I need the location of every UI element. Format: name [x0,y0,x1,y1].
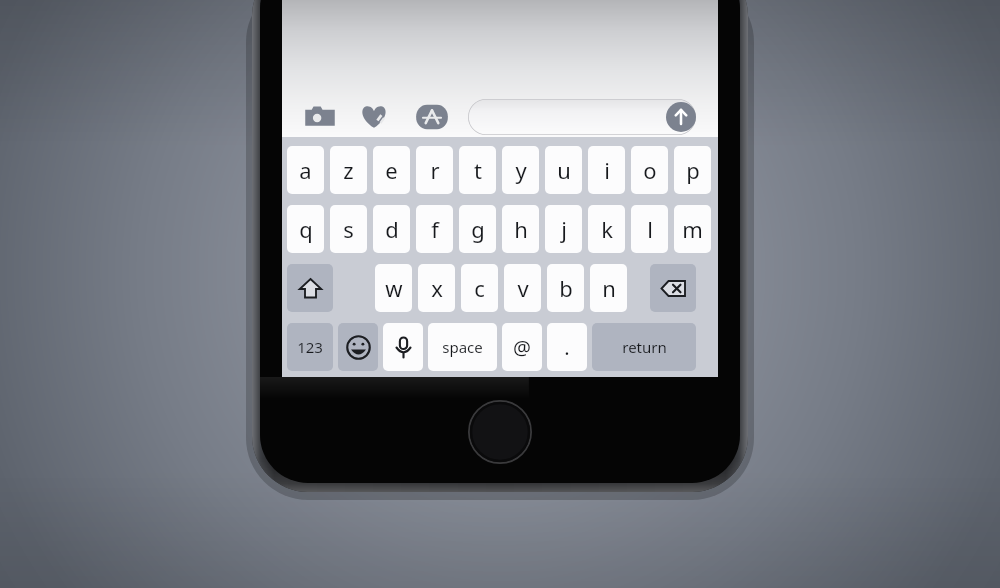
button[interactable]: . [547,323,587,371]
staticText: i [604,155,610,185]
button[interactable]: h [502,205,539,253]
button[interactable]: Backspace [650,264,696,312]
button[interactable]: w [375,264,412,312]
button[interactable]: x [418,264,455,312]
button[interactable]: i [588,146,625,194]
button[interactable]: v [504,264,541,312]
staticText: j [561,214,567,244]
button[interactable]: Shift [287,264,333,312]
button[interactable]: b [547,264,584,312]
staticText: 123 [297,337,323,357]
button[interactable]: App Store [414,99,450,135]
button[interactable]: r [416,146,453,194]
button[interactable]: space [428,323,497,371]
button[interactable]: @ [502,323,542,371]
staticText: n [602,273,616,303]
button[interactable]: 123 [287,323,333,371]
button[interactable]: Dictation [383,323,423,371]
button[interactable]: m [674,205,711,253]
staticText: p [686,155,700,185]
button[interactable]: Send [666,102,696,132]
staticText: q [299,214,313,244]
button[interactable]: l [631,205,668,253]
button[interactable]: c [461,264,498,312]
staticText: w [385,273,403,303]
button[interactable]: y [502,146,539,194]
button[interactable]: Message input [468,99,696,135]
staticText: c [474,273,485,303]
staticText: @ [513,334,531,361]
staticText: b [559,273,573,303]
button[interactable]: p [674,146,711,194]
button[interactable]: u [545,146,582,194]
staticText: space [442,337,483,357]
button[interactable]: n [590,264,627,312]
staticText: e [385,155,398,185]
staticText: d [385,214,399,244]
button[interactable]: f [416,205,453,253]
button[interactable]: q [287,205,324,253]
button[interactable]: Digital Touch [356,99,392,135]
button[interactable]: z [330,146,367,194]
staticText: u [557,155,571,185]
staticText: y [515,155,527,185]
button[interactable]: Camera [302,99,338,135]
staticText: s [343,214,354,244]
button[interactable]: return [592,323,696,371]
staticText: a [299,155,312,185]
staticText: . [564,334,570,361]
button[interactable]: t [459,146,496,194]
staticText: k [601,214,613,244]
staticText: v [517,273,529,303]
staticText: l [647,214,653,244]
staticText: f [431,214,439,244]
button[interactable]: d [373,205,410,253]
button[interactable]: j [545,205,582,253]
button[interactable]: o [631,146,668,194]
staticText: o [643,155,657,185]
staticText: z [343,155,354,185]
button[interactable]: a [287,146,324,194]
button[interactable]: k [588,205,625,253]
button[interactable]: Emoji [338,323,378,371]
staticText: r [430,155,440,185]
button[interactable]: s [330,205,367,253]
staticText: t [474,155,482,185]
staticText: x [431,273,443,303]
button[interactable]: g [459,205,496,253]
staticText: g [471,214,485,244]
staticText: h [514,214,528,244]
staticText: return [622,337,667,357]
staticText: m [682,214,703,244]
button[interactable]: e [373,146,410,194]
